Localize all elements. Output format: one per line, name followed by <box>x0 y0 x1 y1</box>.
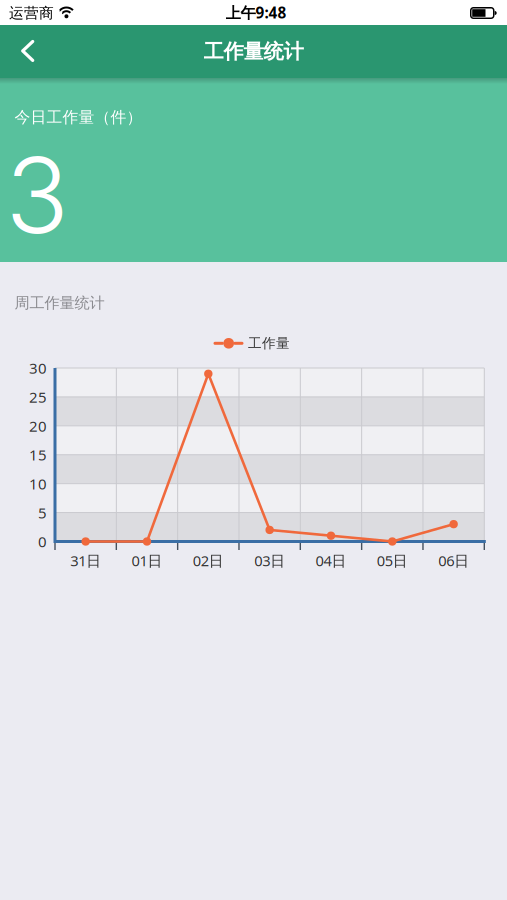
staticText: 3 <box>5 132 68 258</box>
staticText: 25 <box>29 387 47 407</box>
staticText: 10 <box>29 473 47 494</box>
staticText: 04日 <box>315 550 346 570</box>
staticText: 今日工作量（件） <box>14 107 142 127</box>
staticText: 15 <box>29 444 47 465</box>
staticText: 0 <box>38 531 47 552</box>
staticText: 01日 <box>131 550 162 570</box>
staticText: 30 <box>29 358 47 378</box>
staticText: 周工作量统计 <box>14 293 104 312</box>
staticText: 运营商 <box>9 4 54 22</box>
staticText: 5 <box>38 502 47 523</box>
staticText: 06日 <box>438 550 469 570</box>
staticText: 20 <box>29 416 47 436</box>
staticText: 05日 <box>377 550 408 570</box>
staticText: 上午9:48 <box>225 2 286 23</box>
button[interactable] <box>2 29 46 73</box>
staticText: 工作量 <box>248 335 290 352</box>
staticText: 工作量统计 <box>203 39 303 64</box>
staticText: 02日 <box>193 550 224 570</box>
staticText: 31日 <box>70 550 101 570</box>
staticText: 03日 <box>254 550 285 570</box>
